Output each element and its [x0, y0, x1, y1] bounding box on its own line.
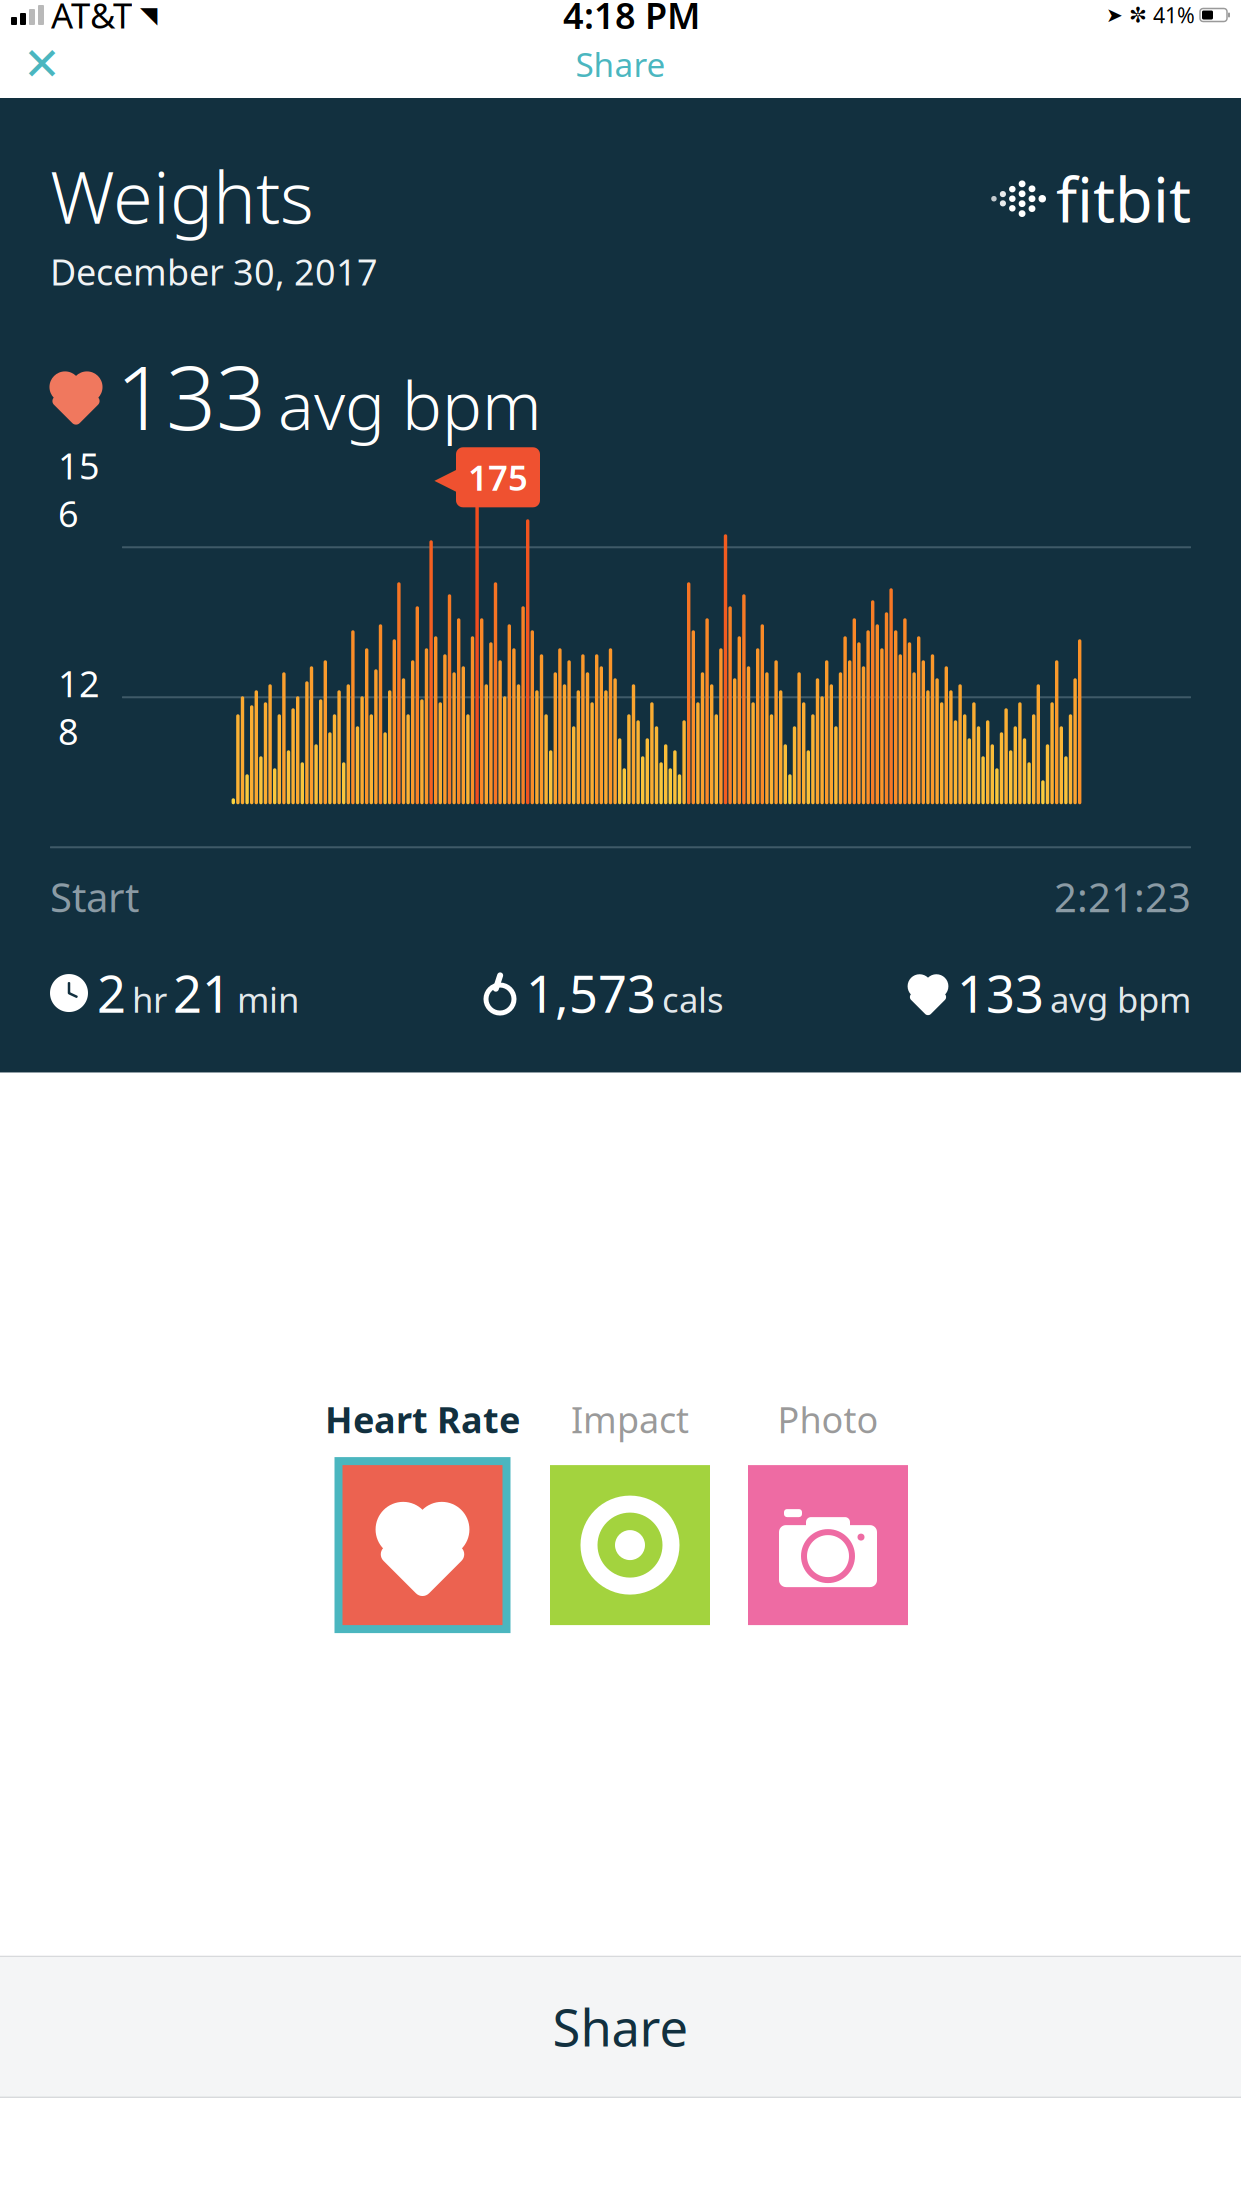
button[interactable]: Share: [0, 1957, 1241, 2096]
staticText: Heart Rate: [325, 1395, 520, 1443]
staticText: Share: [575, 42, 665, 86]
staticText: Start: [50, 870, 139, 923]
staticText: AT&T: [51, 0, 132, 38]
staticText: 133: [957, 959, 1044, 1027]
staticText: 41%: [1153, 1, 1195, 29]
staticText: 4:18 PM: [563, 0, 700, 39]
staticText: cals: [662, 976, 724, 1022]
button[interactable]: Share: [557, 36, 683, 92]
staticText: fitbit: [1056, 158, 1191, 239]
button[interactable]: Photo: [740, 1395, 916, 1633]
staticText: 156: [58, 442, 100, 537]
staticText: 128: [58, 659, 100, 755]
button[interactable]: Heart Rate: [325, 1395, 520, 1633]
staticText: avg bpm: [1050, 976, 1191, 1022]
staticText: Impact: [571, 1395, 689, 1443]
staticText: ◀: [434, 455, 465, 500]
staticText: Share: [552, 1993, 688, 2060]
button[interactable]: Impact: [542, 1395, 718, 1633]
staticText: Photo: [777, 1395, 878, 1443]
staticText: ◥: [140, 2, 157, 28]
staticText: min: [237, 976, 299, 1022]
button[interactable]: Close: [14, 36, 70, 92]
staticText: 1,573: [526, 959, 656, 1027]
staticText: 2:21:23: [1054, 870, 1191, 923]
staticText: 21: [173, 959, 231, 1027]
staticText: ✼: [1129, 3, 1147, 27]
staticText: December 30, 2017: [50, 248, 378, 295]
staticText: avg bpm: [278, 360, 542, 448]
staticText: 2: [97, 959, 126, 1027]
staticText: ➤: [1106, 4, 1123, 26]
staticText: 175: [468, 454, 528, 500]
staticText: 133: [116, 337, 266, 454]
staticText: Weights: [50, 148, 314, 244]
staticText: hr: [132, 976, 167, 1022]
staticText: ✕: [23, 38, 61, 90]
